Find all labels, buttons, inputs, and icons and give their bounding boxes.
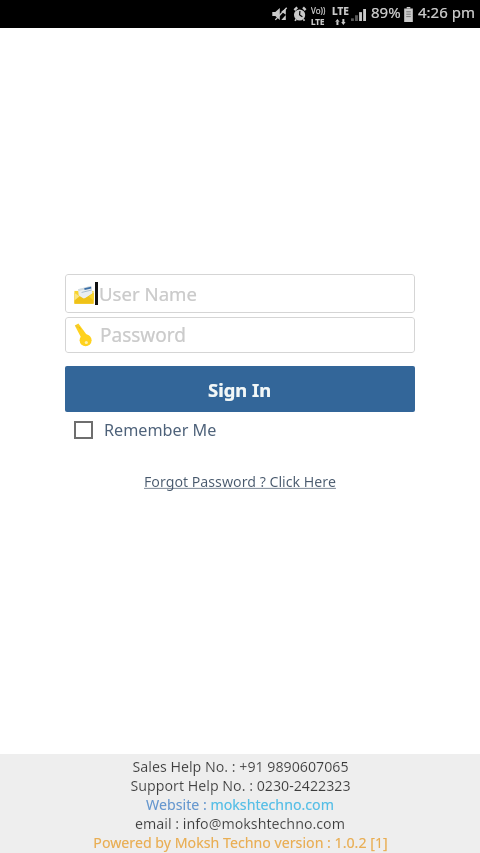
staticText: email : info@mokshtechno.com [135,814,345,833]
staticText: User Name [99,281,197,306]
button[interactable]: Email [65,274,415,313]
staticText: LTE [311,16,325,27]
other: Password key [74,323,94,347]
staticText: LTE [332,4,349,18]
other: Email [74,283,94,305]
staticText: Sign In [208,377,272,402]
button[interactable]: Password key [65,317,415,353]
staticText: Support Help No. : 0230-2422323 [130,776,351,795]
staticText: 89% [371,2,401,22]
staticText: Powered by Moksh Techno version : 1.0.2 … [93,833,388,852]
staticText: Remember Me [104,419,217,441]
staticText: 4:26 pm [418,2,475,22]
staticText: Vo)) [311,5,326,16]
button[interactable]: Remember Me [65,419,217,441]
staticText: Website : mokshtechno.com [146,795,334,814]
button[interactable]: Sign In [65,366,415,412]
staticText: Password [100,322,186,348]
button[interactable]: Forgot Password ? Click Here [144,472,336,491]
staticText: Sales Help No. : +91 9890607065 [132,757,349,776]
